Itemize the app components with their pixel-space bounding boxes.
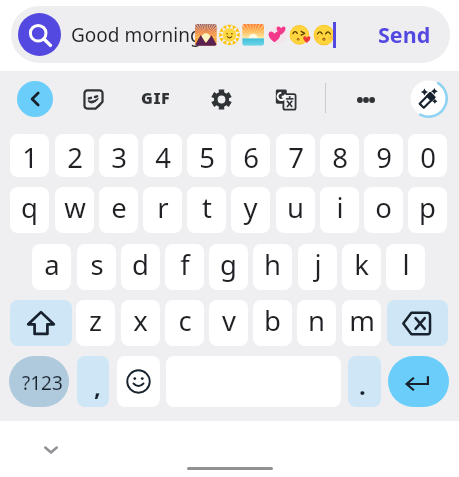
- staticText: ?123: [22, 370, 63, 396]
- staticText: k: [354, 246, 369, 283]
- button[interactable]: q: [10, 187, 49, 233]
- staticText: .: [359, 369, 366, 402]
- staticText: y: [243, 189, 258, 226]
- staticText: a: [44, 246, 60, 283]
- button[interactable]: Search: [18, 13, 61, 56]
- button[interactable]: 5: [187, 134, 226, 177]
- staticText: 6: [243, 139, 259, 176]
- staticText: o: [375, 189, 392, 226]
- button[interactable]: .: [348, 356, 381, 407]
- button[interactable]: More options: [350, 84, 381, 115]
- button[interactable]: y: [231, 187, 270, 233]
- staticText: i: [336, 189, 344, 226]
- staticText: r: [157, 189, 169, 226]
- button[interactable]: i: [320, 187, 359, 233]
- button[interactable]: 8: [320, 134, 359, 177]
- staticText: e: [111, 189, 127, 226]
- staticText: 5: [199, 139, 215, 176]
- button[interactable]: 4: [143, 134, 182, 177]
- staticText: g: [220, 246, 237, 283]
- button[interactable]: Shift: [10, 300, 72, 346]
- staticText: t: [202, 189, 212, 226]
- button[interactable]: GIF: [140, 82, 172, 113]
- button[interactable]: x: [121, 300, 160, 346]
- button[interactable]: k: [342, 244, 381, 290]
- staticText: j: [314, 246, 322, 283]
- button[interactable]: Emoji: [117, 356, 160, 407]
- staticText: z: [89, 302, 102, 339]
- staticText: 0: [420, 139, 436, 176]
- button[interactable]: t: [187, 187, 226, 233]
- staticText: 2: [67, 139, 83, 176]
- button[interactable]: 6: [231, 134, 270, 177]
- button[interactable]: Back: [17, 81, 53, 117]
- button[interactable]: o: [364, 187, 403, 233]
- button[interactable]: 3: [99, 134, 138, 177]
- staticText: b: [264, 302, 281, 339]
- staticText: n: [308, 302, 325, 339]
- button[interactable]: v: [209, 300, 248, 346]
- staticText: c: [178, 302, 192, 339]
- button[interactable]: c: [165, 300, 204, 346]
- staticText: l: [402, 246, 410, 283]
- staticText: Send: [378, 20, 431, 49]
- button[interactable]: m: [342, 300, 381, 346]
- button[interactable]: Enter: [388, 356, 449, 407]
- button[interactable]: r: [143, 187, 182, 233]
- button[interactable]: 1: [10, 134, 49, 177]
- staticText: x: [133, 302, 148, 339]
- button[interactable]: l: [386, 244, 425, 290]
- button[interactable]: z: [76, 300, 115, 346]
- button[interactable]: Backspace: [387, 300, 448, 346]
- button[interactable]: 9: [364, 134, 403, 177]
- button[interactable]: f: [165, 244, 204, 290]
- button[interactable]: u: [276, 187, 315, 233]
- button[interactable]: Settings: [206, 84, 237, 115]
- staticText: d: [132, 246, 149, 283]
- staticText: Good morning: [71, 22, 202, 48]
- button[interactable]: h: [253, 244, 292, 290]
- staticText: 1: [22, 139, 38, 176]
- staticText: h: [264, 246, 281, 283]
- staticText: q: [21, 189, 38, 226]
- staticText: w: [64, 189, 86, 226]
- button[interactable]: Send: [378, 20, 431, 49]
- staticText: 8: [332, 139, 348, 176]
- button[interactable]: e: [99, 187, 138, 233]
- button[interactable]: Search: [11, 6, 450, 63]
- staticText: ,: [94, 370, 101, 403]
- staticText: m: [349, 302, 375, 339]
- button[interactable]: Hide keyboard: [35, 434, 67, 466]
- button[interactable]: d: [121, 244, 160, 290]
- button[interactable]: p: [408, 187, 447, 233]
- staticText: GIF: [141, 87, 171, 109]
- staticText: 7: [288, 139, 304, 176]
- button[interactable]: n: [297, 300, 336, 346]
- staticText: 3: [111, 139, 127, 176]
- staticText: f: [180, 246, 190, 283]
- button[interactable]: Magic compose: [409, 79, 448, 118]
- button[interactable]: ?123: [9, 356, 69, 407]
- button[interactable]: w: [55, 187, 94, 233]
- button[interactable]: 7: [276, 134, 315, 177]
- button[interactable]: j: [298, 244, 337, 290]
- button[interactable]: ,: [77, 356, 109, 407]
- button[interactable]: 2: [55, 134, 94, 177]
- button[interactable]: g: [209, 244, 248, 290]
- staticText: v: [222, 302, 236, 339]
- button[interactable]: 0: [408, 134, 447, 177]
- staticText: s: [90, 246, 104, 283]
- staticText: p: [419, 189, 436, 226]
- button[interactable]: Stickers: [78, 84, 109, 115]
- button[interactable]: s: [77, 244, 116, 290]
- staticText: 4: [155, 139, 171, 176]
- button[interactable]: b: [253, 300, 292, 346]
- button[interactable]: a: [32, 244, 71, 290]
- button[interactable]: Translate: [270, 84, 301, 115]
- staticText: 9: [376, 139, 392, 176]
- staticText: u: [287, 189, 304, 226]
